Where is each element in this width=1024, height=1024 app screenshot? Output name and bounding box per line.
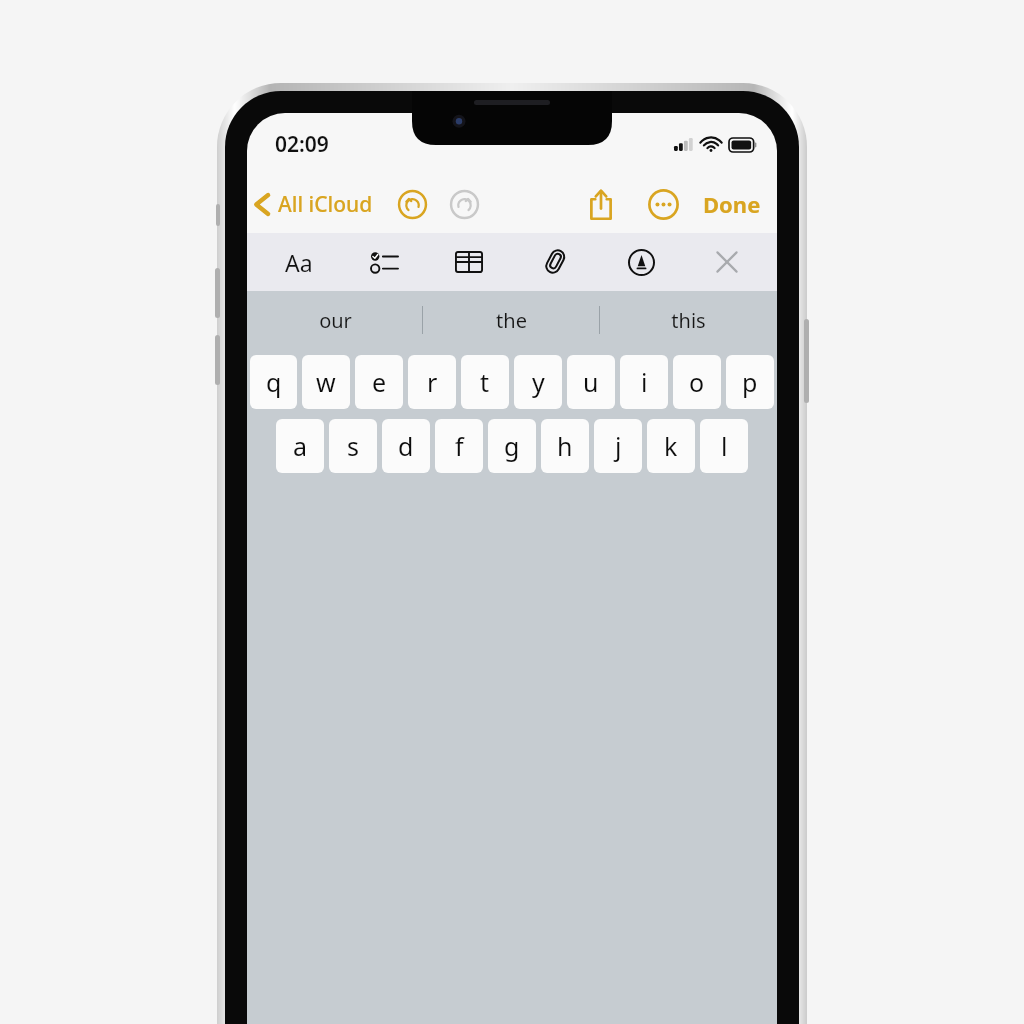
button[interactable]: f — [435, 419, 483, 473]
staticText: e — [372, 365, 387, 399]
button[interactable]: s — [329, 419, 377, 473]
button[interactable]: i — [620, 355, 668, 409]
staticText: t — [480, 365, 490, 399]
staticText: our — [319, 307, 352, 334]
staticText: Done — [703, 189, 761, 219]
button[interactable]: g — [488, 419, 536, 473]
staticText: y — [532, 365, 545, 399]
button[interactable]: Attach file — [533, 240, 577, 284]
button[interactable]: d — [382, 419, 430, 473]
button[interactable]: Markup — [619, 240, 663, 284]
staticText: k — [664, 429, 678, 463]
staticText: Aa — [285, 247, 313, 278]
staticText: the — [496, 307, 527, 334]
staticText: s — [347, 429, 359, 463]
staticText: a — [293, 429, 308, 463]
button[interactable]: Undo — [393, 185, 431, 223]
staticText: f — [455, 429, 464, 463]
button[interactable]: All iCloud — [247, 184, 377, 225]
button[interactable]: p — [726, 355, 774, 409]
staticText: p — [742, 365, 758, 399]
button[interactable]: our — [247, 291, 423, 349]
staticText: 02:09 — [275, 130, 329, 159]
button[interactable]: the — [423, 291, 600, 349]
button[interactable]: o — [673, 355, 721, 409]
button[interactable]: e — [355, 355, 403, 409]
staticText: q — [266, 365, 282, 399]
staticText: All iCloud — [278, 190, 373, 219]
button[interactable]: q — [250, 355, 297, 409]
button[interactable]: Checklist — [362, 240, 406, 284]
staticText: o — [689, 365, 705, 399]
button[interactable]: l — [700, 419, 748, 473]
button[interactable]: r — [408, 355, 456, 409]
button[interactable]: Share — [581, 184, 621, 224]
button[interactable]: k — [647, 419, 695, 473]
button[interactable]: h — [541, 419, 589, 473]
staticText: this — [671, 307, 706, 334]
staticText: w — [316, 365, 336, 399]
button[interactable]: Done — [697, 181, 767, 227]
button[interactable]: Redo — [445, 185, 483, 223]
button[interactable]: Close keyboard — [705, 240, 749, 284]
staticText: j — [615, 429, 622, 463]
button[interactable]: w — [302, 355, 350, 409]
button[interactable]: j — [594, 419, 642, 473]
staticText: d — [398, 429, 414, 463]
button[interactable]: Text format — [277, 240, 321, 284]
button[interactable]: More options — [643, 184, 683, 224]
staticText: i — [641, 365, 648, 399]
staticText: r — [427, 365, 438, 399]
button[interactable]: Table — [447, 240, 491, 284]
staticText: l — [721, 429, 728, 463]
button[interactable]: this — [600, 291, 777, 349]
button[interactable]: a — [276, 419, 324, 473]
staticText: h — [557, 429, 573, 463]
button[interactable]: t — [461, 355, 509, 409]
staticText: g — [504, 429, 520, 463]
staticText: u — [583, 365, 599, 399]
button[interactable]: y — [514, 355, 562, 409]
button[interactable]: u — [567, 355, 615, 409]
